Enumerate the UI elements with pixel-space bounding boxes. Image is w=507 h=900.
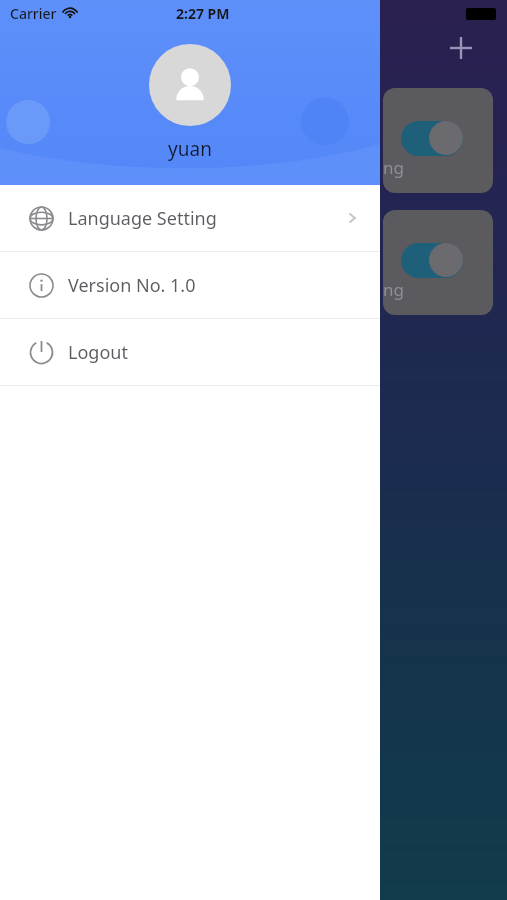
- button[interactable]: [401, 243, 463, 278]
- staticText: ng: [383, 278, 404, 301]
- staticText: ng: [383, 156, 404, 179]
- staticText: Version No. 1.0: [68, 273, 196, 298]
- staticText: Logout: [68, 340, 128, 365]
- staticText: Language Setting: [68, 206, 217, 231]
- button[interactable]: Logout: [0, 319, 380, 385]
- button[interactable]: ng: [383, 88, 493, 193]
- button[interactable]: ng: [383, 210, 493, 315]
- staticText: Carrier: [10, 4, 57, 23]
- button[interactable]: [401, 121, 463, 156]
- button[interactable]: Profile photo: [149, 44, 231, 126]
- staticText: 2:27 PM: [176, 4, 230, 23]
- button[interactable]: Version No. 1.0: [0, 252, 380, 318]
- button[interactable]: Add: [441, 28, 481, 68]
- staticText: yuan: [168, 136, 212, 162]
- button[interactable]: Language Setting: [0, 185, 380, 251]
